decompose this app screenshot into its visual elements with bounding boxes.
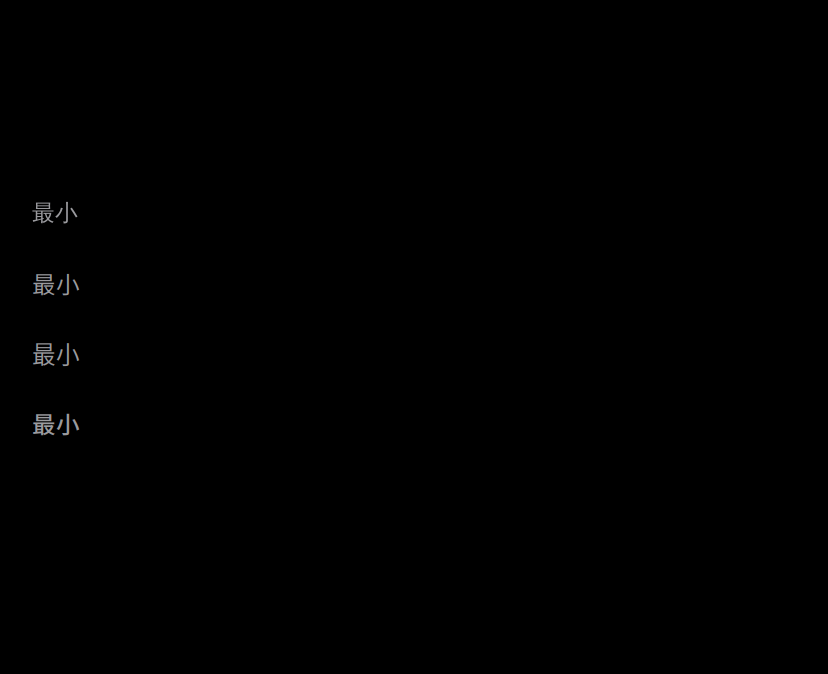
staticText: 最小: [32, 266, 80, 300]
staticText: 最小: [32, 336, 80, 370]
staticText: 最小: [32, 406, 80, 440]
staticText: 最小: [32, 199, 78, 227]
